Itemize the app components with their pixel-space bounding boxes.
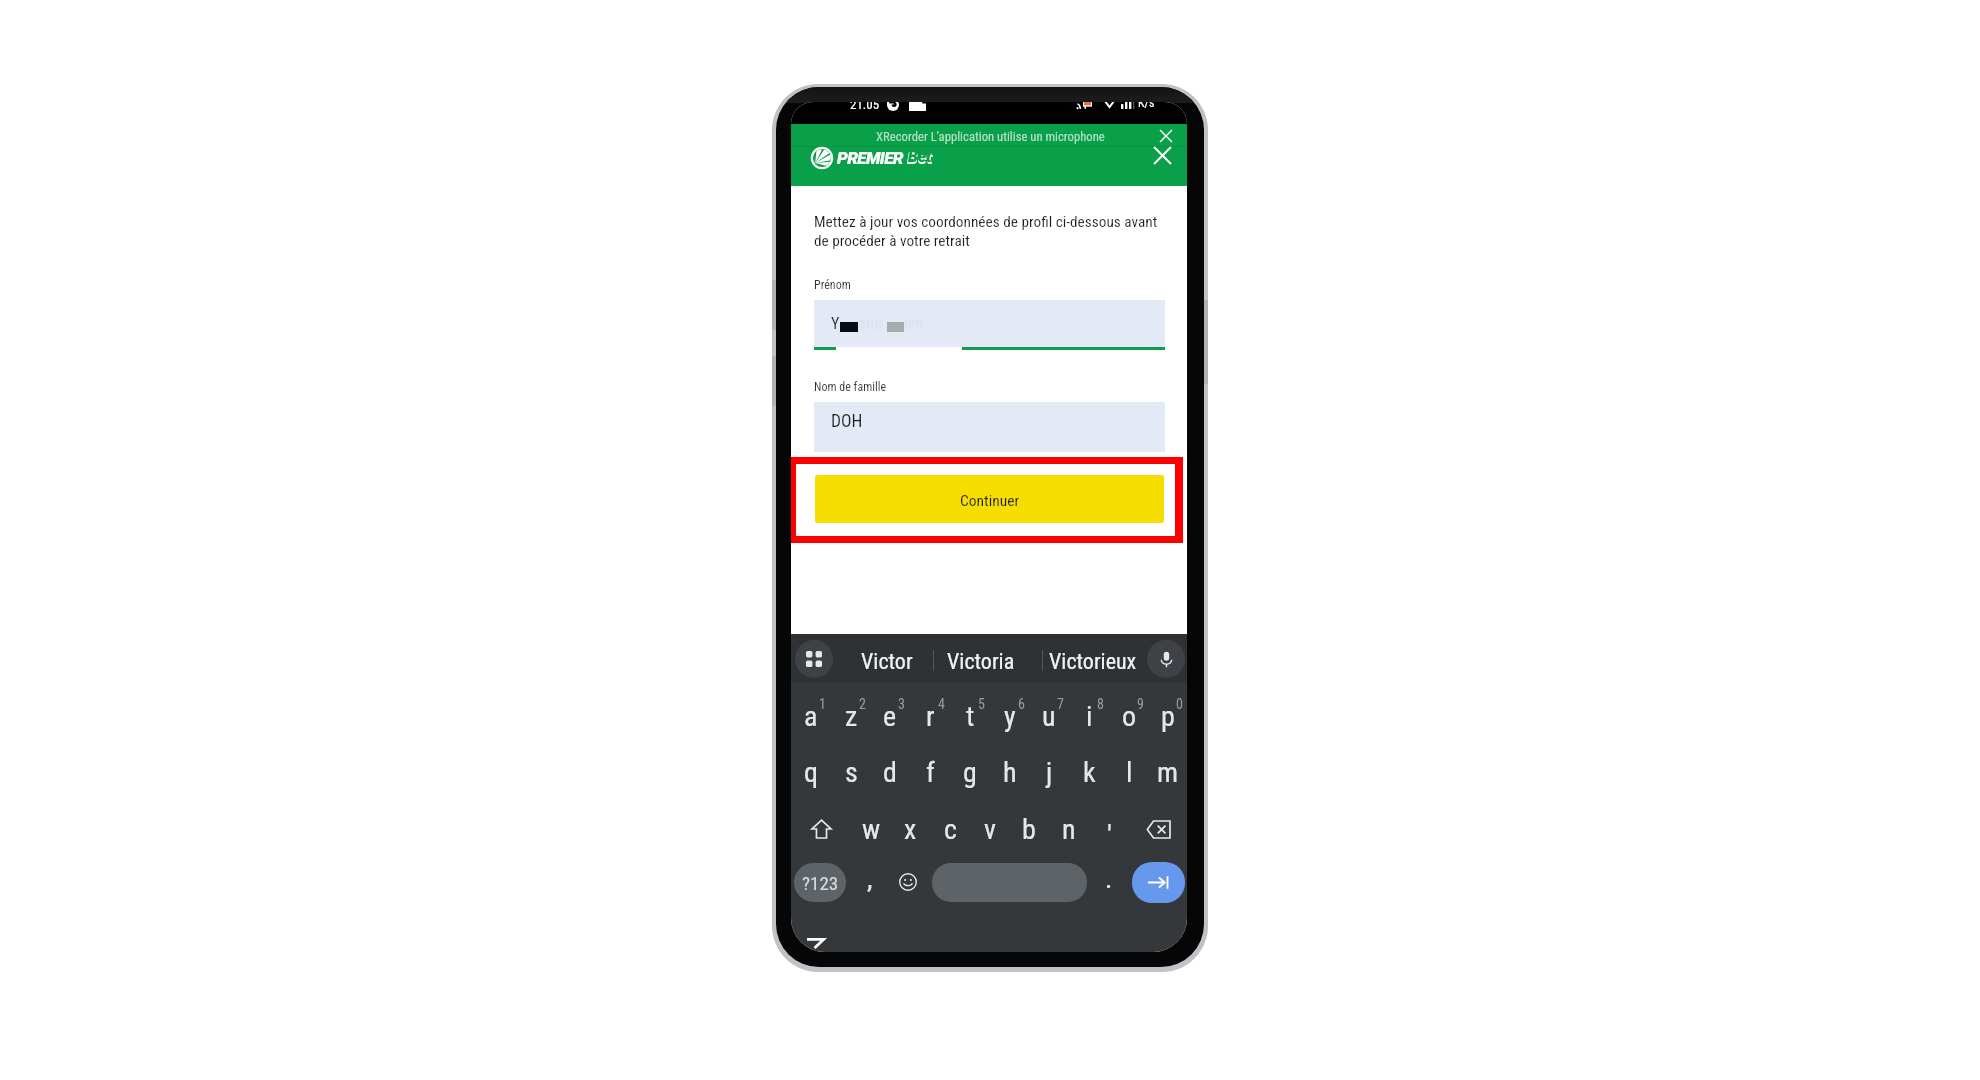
staticText: f	[926, 756, 935, 789]
staticText: g	[963, 756, 977, 789]
button[interactable]: x	[890, 801, 930, 857]
button[interactable]: d	[870, 744, 910, 800]
button[interactable]: o	[1109, 688, 1149, 744]
button[interactable]: t	[950, 688, 990, 744]
staticText: 3	[898, 696, 905, 712]
staticText: i	[1086, 700, 1093, 733]
staticText: Continuer	[960, 492, 1020, 510]
staticText: o	[1122, 700, 1137, 733]
button[interactable]: e	[870, 688, 910, 744]
staticText: a	[804, 700, 818, 733]
staticText: Nom de famille	[814, 380, 887, 394]
staticText: 2	[859, 696, 866, 712]
staticText: Y	[831, 314, 840, 333]
button[interactable]: a	[791, 688, 831, 744]
staticText: w	[862, 813, 881, 846]
button[interactable]: u	[1029, 688, 1069, 744]
button[interactable]: p	[1148, 688, 1187, 744]
staticText: Bet	[908, 148, 932, 166]
staticText: ?123	[802, 872, 839, 894]
staticText: ,	[867, 862, 873, 895]
staticText: 9	[1137, 696, 1144, 712]
button[interactable]: ,	[850, 853, 890, 911]
button[interactable]: j	[1029, 744, 1069, 800]
staticText: b	[1022, 813, 1036, 846]
button[interactable]: f	[910, 744, 950, 800]
staticText: x	[904, 813, 917, 846]
staticText: q	[804, 756, 819, 789]
staticText: h	[1003, 756, 1017, 789]
staticText: m	[1157, 756, 1179, 789]
button[interactable]: r	[910, 688, 950, 744]
button[interactable]: l	[1109, 744, 1149, 800]
staticText: PREMIER	[837, 148, 903, 168]
button[interactable]: q	[791, 744, 831, 800]
button[interactable]: v	[970, 801, 1010, 857]
staticText: 5	[978, 696, 985, 712]
button[interactable]: ?123	[794, 863, 846, 902]
staticText: arie	[858, 314, 882, 333]
button[interactable]: Victorieux	[1049, 634, 1137, 682]
staticText: v	[984, 813, 996, 846]
staticText: k	[1083, 756, 1096, 789]
staticText: .	[1105, 862, 1113, 895]
staticText: Mettez à jour vos coordonnées de profil …	[814, 213, 1162, 250]
button[interactable]: y	[990, 688, 1030, 744]
button[interactable]: m	[1148, 744, 1187, 800]
staticText: 4	[938, 696, 945, 712]
staticText: z	[845, 700, 858, 733]
button[interactable]: i	[1069, 688, 1109, 744]
button[interactable]: w	[851, 801, 891, 857]
button[interactable]: Espace	[932, 863, 1087, 902]
button[interactable]: Fermer la notification	[1154, 124, 1178, 148]
staticText: y	[1004, 700, 1016, 733]
staticText: 6	[1018, 696, 1025, 712]
button[interactable]: Saisie vocale	[1147, 640, 1185, 678]
button[interactable]: z	[831, 688, 871, 744]
staticText: ien	[904, 314, 923, 333]
staticText: Bet	[907, 148, 933, 168]
button[interactable]: g	[950, 744, 990, 800]
staticText: Victoria	[947, 649, 1015, 675]
staticText: 8	[1097, 696, 1104, 712]
button[interactable]: Continuer	[815, 475, 1164, 523]
staticText: '	[1107, 819, 1112, 852]
staticText: XRecorder L'application utilise un micro…	[876, 129, 1105, 144]
button[interactable]: h	[990, 744, 1030, 800]
staticText: j	[1046, 756, 1053, 789]
button[interactable]: Emoji	[888, 853, 928, 911]
staticText: Victorieux	[1049, 649, 1137, 675]
staticText: K/s	[1138, 102, 1155, 110]
staticText: 21.05	[850, 102, 880, 112]
staticText: 1	[819, 696, 826, 712]
button[interactable]: k	[1069, 744, 1109, 800]
button[interactable]: .	[1089, 853, 1129, 911]
staticText: 0	[1176, 696, 1183, 712]
button[interactable]: Victoria	[942, 634, 1019, 682]
staticText: r	[926, 700, 935, 733]
button[interactable]: Victor	[859, 634, 915, 682]
staticText: n	[1062, 813, 1076, 846]
button[interactable]: s	[831, 744, 871, 800]
staticText: t	[966, 700, 975, 733]
staticText: l	[1126, 756, 1133, 789]
staticText: DOH	[831, 411, 863, 432]
staticText: d	[883, 756, 897, 789]
staticText: 7	[1057, 696, 1064, 712]
button[interactable]: n	[1049, 801, 1089, 857]
staticText: p	[1161, 700, 1175, 733]
button[interactable]: Menu du clavier	[795, 640, 833, 678]
button[interactable]: '	[1089, 801, 1129, 857]
button[interactable]: c	[930, 801, 970, 857]
staticText: u	[1042, 700, 1056, 733]
button[interactable]: Majuscule	[791, 801, 851, 857]
button[interactable]: b	[1009, 801, 1049, 857]
staticText: c	[944, 813, 957, 846]
button[interactable]: Fermer	[1147, 140, 1177, 170]
staticText: Prénom	[814, 278, 851, 292]
staticText: s	[845, 756, 858, 789]
button[interactable]: Suivant	[1132, 862, 1185, 903]
button[interactable]: Retour arrière	[1128, 801, 1187, 857]
staticText: Victor	[861, 649, 913, 675]
staticText: e	[883, 700, 897, 733]
